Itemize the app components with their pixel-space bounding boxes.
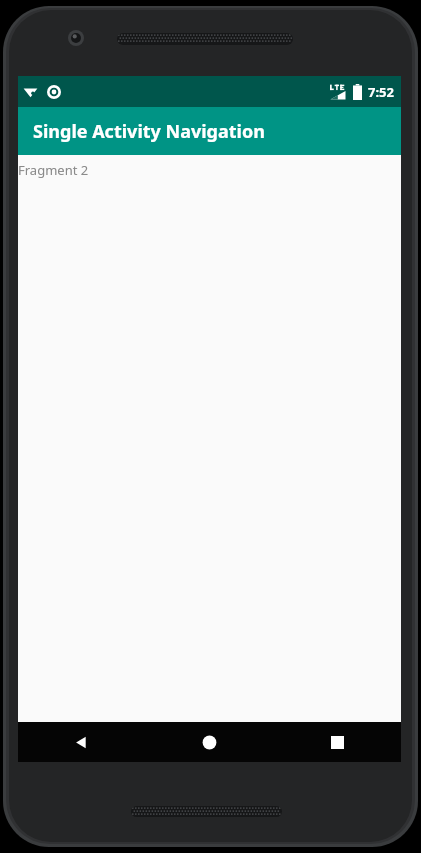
button[interactable]: Home [145,722,273,762]
button[interactable]: Single Activity Navigation [18,107,401,155]
staticText: 7:52 [368,83,394,101]
button[interactable]: Recent apps [273,722,401,762]
staticText: Single Activity Navigation [33,119,265,144]
button[interactable]: Back [18,722,145,762]
staticText: Fragment 2 [18,161,89,179]
